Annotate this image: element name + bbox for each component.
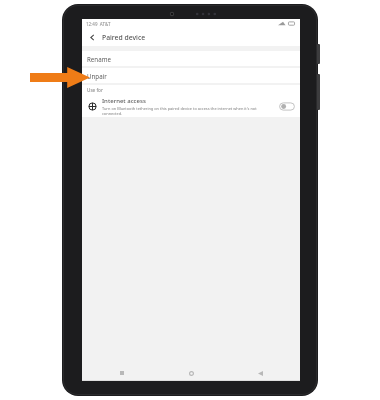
button[interactable]: Unpair (82, 68, 300, 83)
button[interactable]: Rename (82, 51, 300, 66)
staticText: Rename (87, 55, 111, 63)
button[interactable]: Internet access toggle (279, 102, 295, 111)
button[interactable]: Recents (116, 367, 128, 379)
staticText: 12:49 AT&T (86, 21, 111, 27)
staticText: Paired device (102, 33, 146, 42)
button[interactable]: Back (85, 30, 99, 44)
staticText: Turn on Bluetooth tethering on this pair… (102, 106, 275, 116)
staticText: Use for (87, 87, 103, 93)
staticText: Internet access (102, 97, 146, 105)
button[interactable]: Internet access (82, 95, 300, 117)
other: Pointer arrow highlighting Unpair (30, 67, 90, 88)
button[interactable]: Back (254, 367, 266, 379)
staticText: Unpair (87, 72, 107, 80)
button[interactable]: Home (185, 367, 197, 379)
